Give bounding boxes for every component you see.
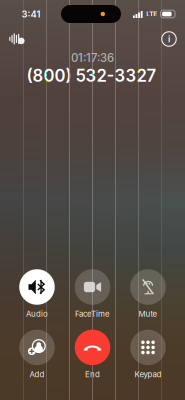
staticText: LTE xyxy=(146,10,157,18)
staticText: (800) 532-3327 xyxy=(26,65,156,86)
button[interactable]: Voice Isolation xyxy=(2,28,32,50)
staticText: End xyxy=(85,370,100,379)
staticText: i xyxy=(168,34,170,44)
staticText: FaceTime xyxy=(75,309,110,319)
button[interactable]: FaceTime xyxy=(64,269,120,319)
staticText: Audio xyxy=(26,309,48,319)
button[interactable]: Audio xyxy=(9,269,65,319)
staticText: Add xyxy=(29,370,44,379)
staticText: Mute xyxy=(138,309,157,319)
staticText: Keypad xyxy=(134,370,161,379)
staticText: 3:41 xyxy=(21,8,40,20)
button[interactable]: End xyxy=(64,330,120,380)
button[interactable]: Mute xyxy=(120,269,176,319)
staticText: 01:17:36 xyxy=(71,51,114,65)
button[interactable]: Call Info xyxy=(156,28,182,50)
button[interactable]: Keypad xyxy=(120,330,176,380)
button[interactable]: Add xyxy=(9,330,65,380)
